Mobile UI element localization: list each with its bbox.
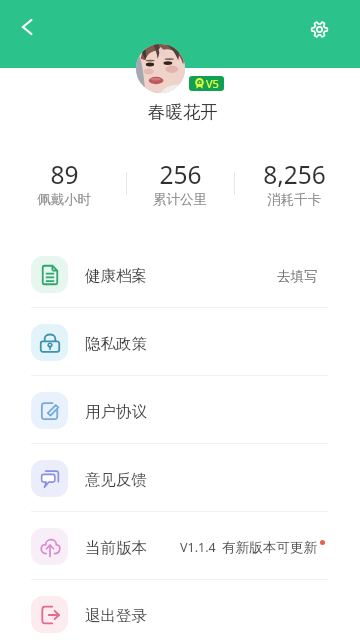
staticText: V1.1.4 bbox=[180, 539, 216, 556]
button[interactable]: 隐私政策 bbox=[0, 308, 360, 376]
staticText: 用户协议 bbox=[85, 402, 147, 422]
button[interactable]: 当前版本 bbox=[0, 512, 360, 580]
button[interactable]: 用户协议 bbox=[0, 376, 360, 444]
button[interactable]: Back bbox=[13, 13, 41, 41]
staticText: 健康档案 bbox=[85, 266, 147, 286]
button[interactable]: 退出登录 bbox=[0, 580, 360, 640]
staticText: 意见反馈 bbox=[85, 470, 147, 490]
staticText: 佩戴小时 bbox=[37, 191, 91, 208]
staticText: 退出登录 bbox=[85, 606, 147, 626]
staticText: 当前版本 bbox=[85, 538, 147, 558]
button[interactable]: Settings bbox=[305, 15, 333, 43]
button[interactable]: 健康档案 bbox=[0, 240, 360, 308]
staticText: 89 bbox=[50, 158, 79, 191]
staticText: 去填写 bbox=[277, 268, 318, 285]
staticText: 隐私政策 bbox=[85, 334, 147, 354]
staticText: 累计公里 bbox=[153, 191, 207, 208]
button[interactable]: 意见反馈 bbox=[0, 444, 360, 512]
staticText: 8,256 bbox=[263, 158, 326, 191]
staticText: 消耗千卡 bbox=[267, 191, 321, 208]
staticText: 256 bbox=[159, 158, 202, 191]
staticText: 春暖花开 bbox=[148, 101, 218, 123]
staticText: 有新版本可更新 bbox=[222, 539, 318, 556]
staticText: V5 bbox=[206, 76, 219, 91]
